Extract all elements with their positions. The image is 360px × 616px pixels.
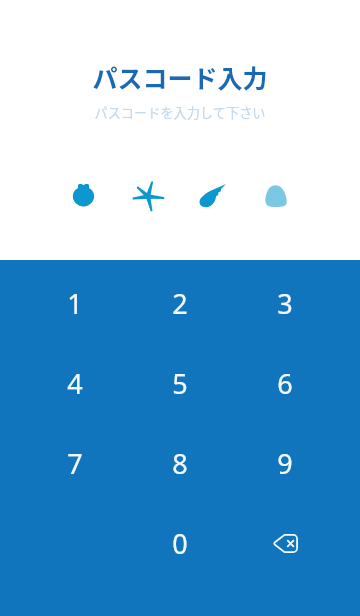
staticText: 4 <box>67 365 83 402</box>
staticText: パスコード入力 <box>0 59 360 95</box>
staticText: 7 <box>67 445 83 482</box>
button[interactable]: 9 <box>233 423 337 503</box>
button[interactable]: 7 <box>23 423 127 503</box>
button[interactable]: 6 <box>233 343 337 423</box>
button[interactable]: 0 <box>128 503 232 583</box>
button[interactable]: 4 <box>23 343 127 423</box>
staticText: 8 <box>172 445 188 482</box>
staticText: 0 <box>172 525 188 562</box>
staticText: 6 <box>277 365 293 402</box>
staticText: パスコードを入力して下さい <box>0 103 360 122</box>
staticText: 1 <box>67 285 83 322</box>
button[interactable]: Delete <box>233 503 337 583</box>
staticText: 3 <box>277 285 293 322</box>
button[interactable]: 1 <box>23 263 127 343</box>
button[interactable]: 8 <box>128 423 232 503</box>
staticText: 2 <box>172 285 188 322</box>
staticText: 5 <box>172 365 188 402</box>
button[interactable]: 5 <box>128 343 232 423</box>
button[interactable]: 3 <box>233 263 337 343</box>
staticText: 9 <box>277 445 293 482</box>
button[interactable]: 2 <box>128 263 232 343</box>
